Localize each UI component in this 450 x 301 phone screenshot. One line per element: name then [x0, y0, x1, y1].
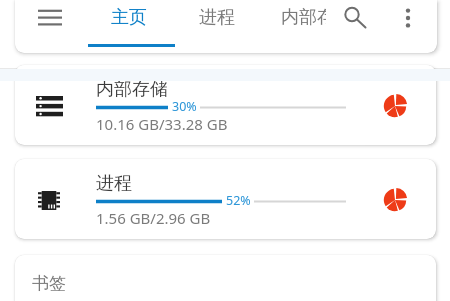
button[interactable]: 进程 [175, 0, 262, 53]
button[interactable]: 内部存储 [15, 65, 436, 145]
staticText: 10.16 GB/33.28 GB [96, 114, 228, 134]
staticText: 书签 [32, 273, 66, 294]
button[interactable]: More options [393, 0, 424, 53]
staticText: 1.56 GB/2.96 GB [96, 208, 211, 228]
staticText: 内部存储 [96, 78, 168, 101]
button[interactable]: 内部存储 [263, 0, 326, 53]
staticText: 内部存储 [281, 6, 326, 29]
staticText: 30% [172, 98, 197, 115]
button[interactable]: 书签 [15, 255, 436, 301]
button[interactable]: Search [340, 0, 378, 53]
staticText: 52% [226, 192, 251, 209]
button[interactable]: 主页 [88, 0, 175, 53]
button[interactable]: 进程 [15, 159, 436, 239]
staticText: 进程 [96, 172, 132, 195]
staticText: 主页 [111, 6, 147, 29]
staticText: 进程 [199, 6, 235, 29]
button[interactable]: Navigation menu [23, 0, 77, 53]
